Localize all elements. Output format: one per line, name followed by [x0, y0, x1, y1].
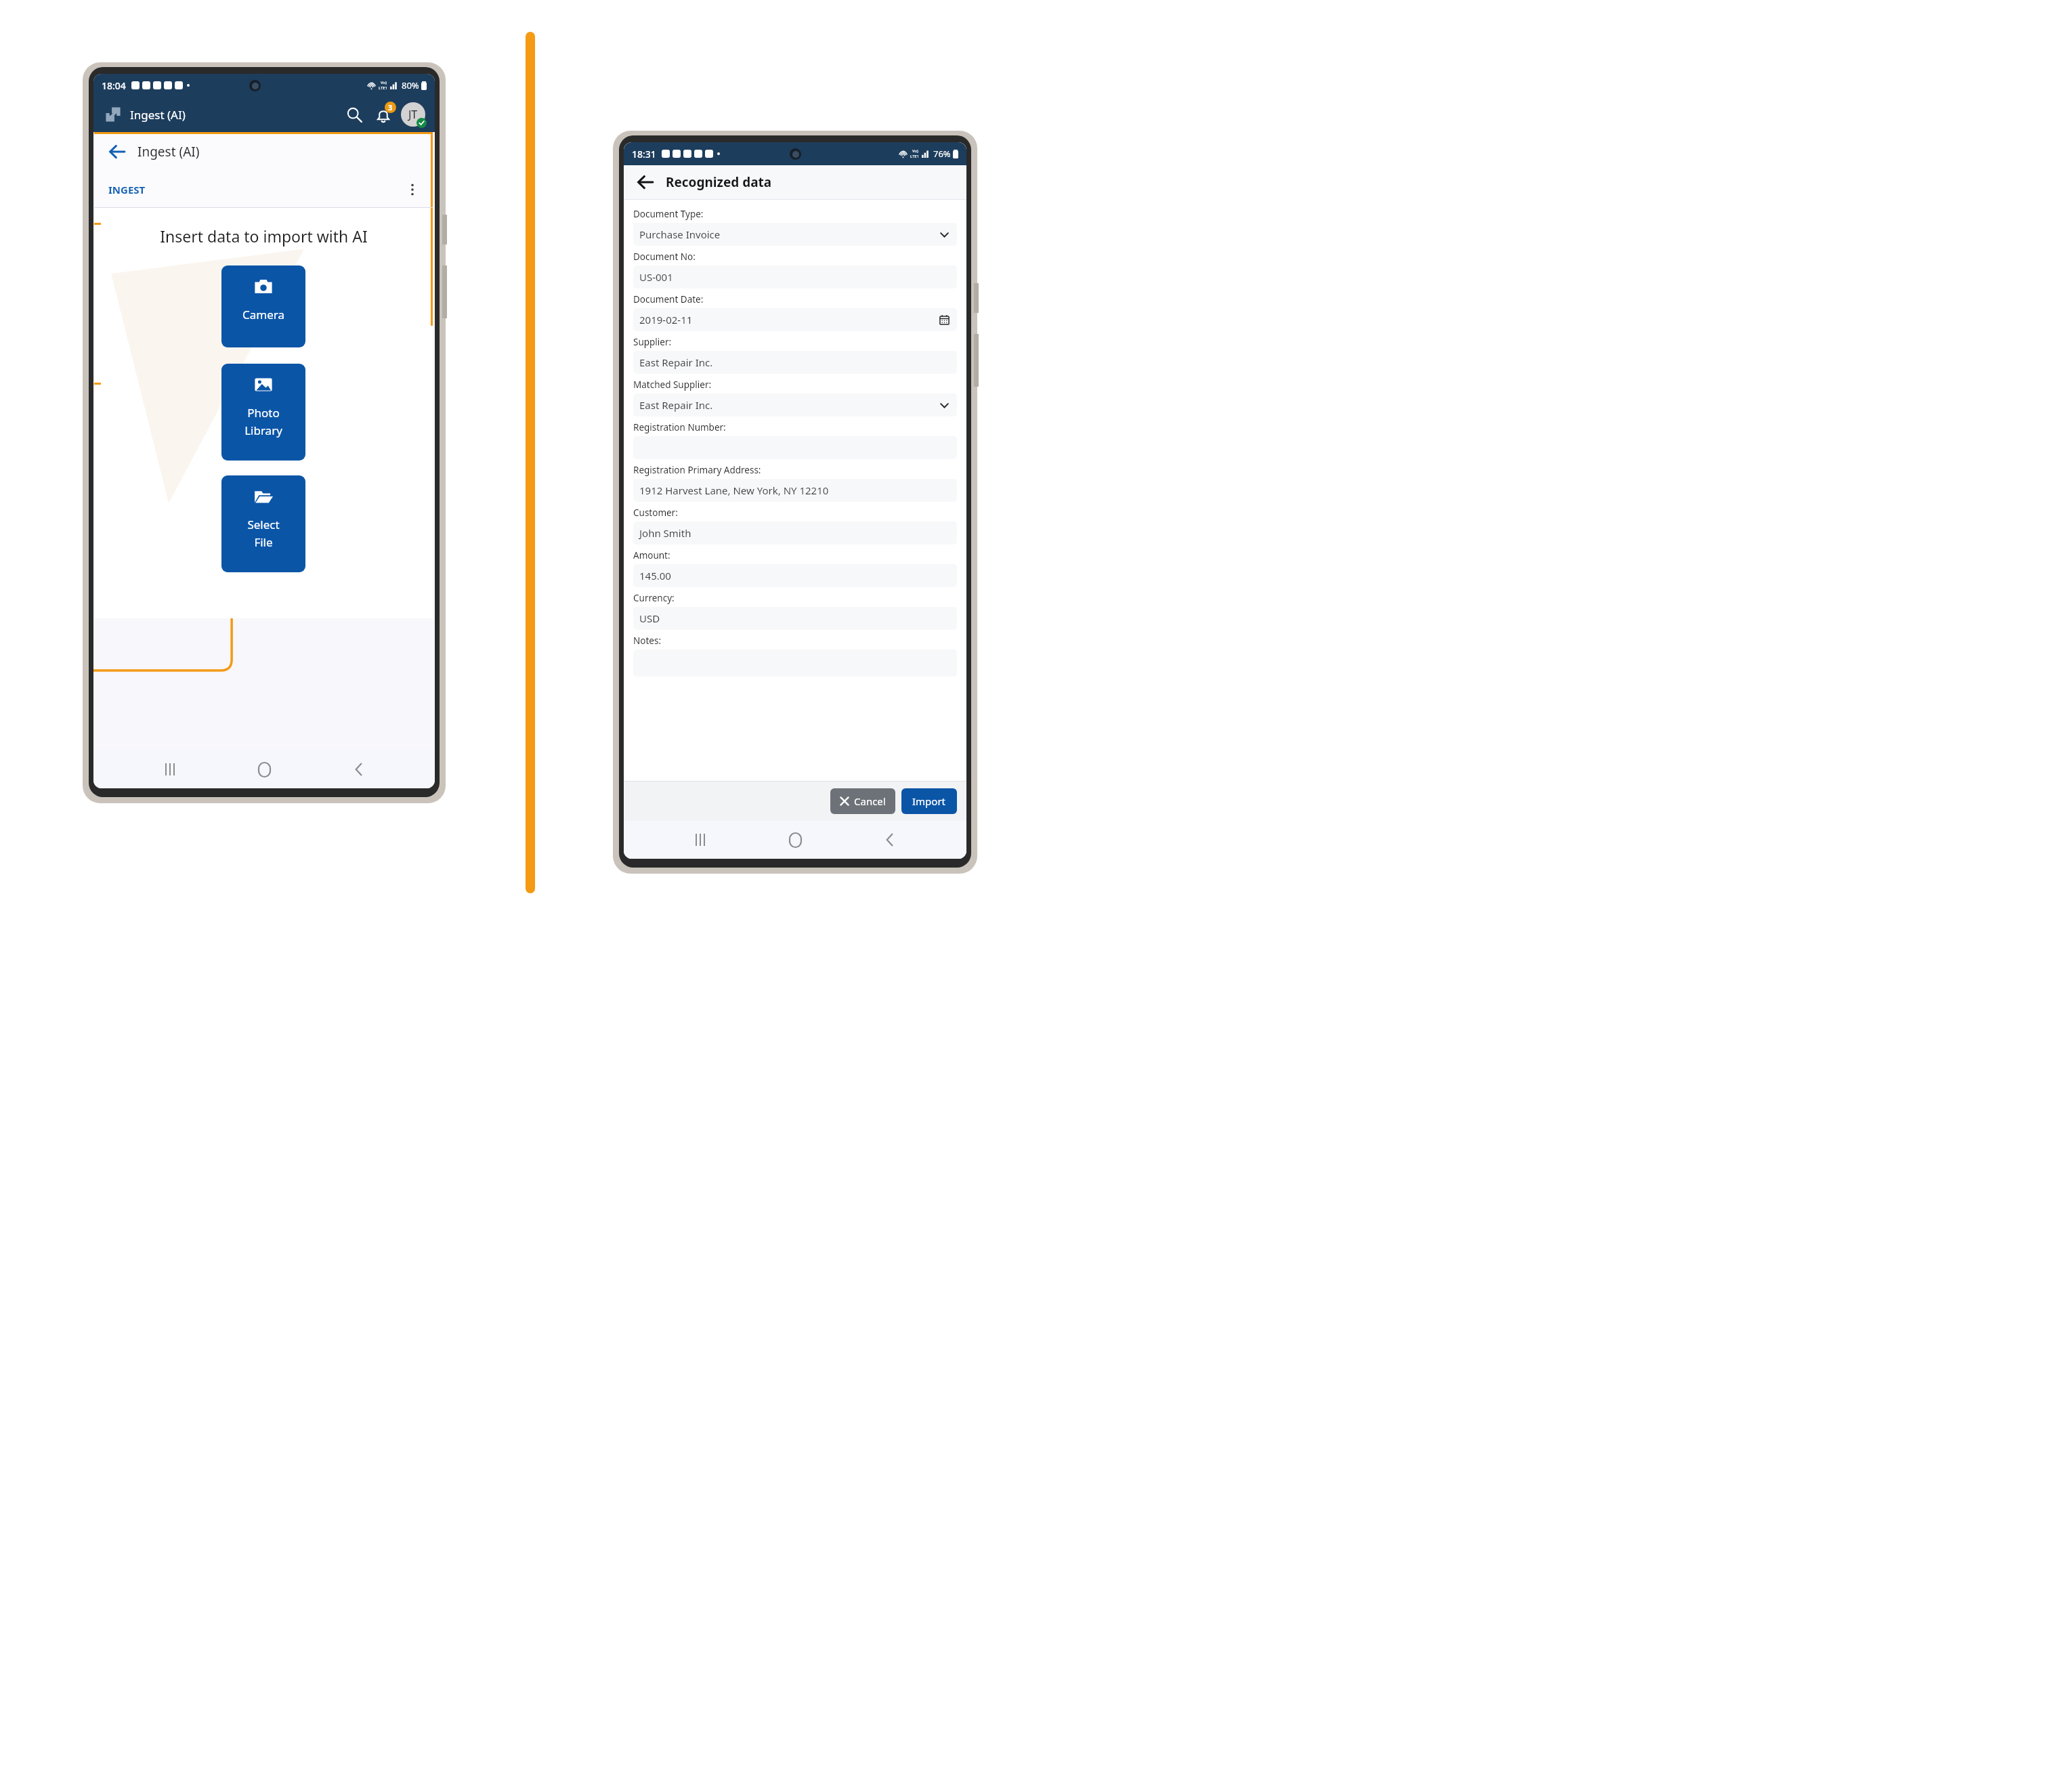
staticText: 80% — [402, 79, 419, 91]
staticText: Document Date: — [633, 293, 704, 305]
staticText: USD — [639, 612, 660, 625]
staticText: 1912 Harvest Lane, New York, NY 12210 — [639, 484, 829, 497]
staticText: Customer: — [633, 507, 678, 519]
staticText: East Repair Inc. — [639, 356, 713, 369]
button[interactable]: 145.00 — [633, 564, 957, 587]
staticText: Vo) — [912, 148, 918, 154]
button[interactable]: App logo — [102, 103, 125, 126]
button[interactable]: US-001 — [633, 265, 957, 289]
staticText: Registration Number: — [633, 421, 726, 433]
staticText: 76% — [933, 148, 951, 160]
staticText: East Repair Inc. — [639, 398, 713, 412]
staticText: Supplier: — [633, 336, 672, 348]
staticText: Notes: — [633, 635, 661, 647]
button[interactable]: 2019-02-11 — [633, 308, 957, 331]
button[interactable]: Search — [341, 102, 367, 127]
staticText: Currency: — [633, 592, 675, 604]
staticText: 2019-02-11 — [639, 313, 693, 326]
button[interactable]: Home — [777, 822, 813, 858]
button[interactable]: Back — [632, 169, 659, 196]
button[interactable]: Back — [341, 751, 377, 788]
staticText: 18:31 — [632, 148, 656, 161]
staticText: 3 — [388, 102, 393, 112]
button[interactable]: Recents — [682, 822, 719, 858]
staticText: LTE1 — [910, 154, 920, 159]
staticText: Photo Library — [244, 405, 282, 438]
button[interactable]: USD — [633, 607, 957, 630]
button[interactable]: John Smith — [633, 521, 957, 545]
staticText: Recognized data — [666, 173, 772, 191]
staticText: Camera — [242, 307, 284, 322]
button[interactable]: Camera — [221, 265, 305, 347]
staticText: Amount: — [633, 549, 670, 561]
button[interactable]: Back — [872, 822, 908, 858]
staticText: Ingest (AI) — [137, 143, 200, 161]
button[interactable]: East Repair Inc. — [633, 351, 957, 374]
button[interactable]: 1912 Harvest Lane, New York, NY 12210 — [633, 479, 957, 502]
staticText: 145.00 — [639, 569, 671, 582]
staticText: Import — [912, 794, 946, 808]
button[interactable]: More options — [400, 177, 425, 202]
button[interactable]: Photo Library — [221, 364, 305, 461]
button[interactable]: Import — [901, 788, 957, 814]
staticText: US-001 — [639, 270, 673, 284]
staticText: Ingest (AI) — [130, 107, 186, 123]
staticText: Matched Supplier: — [633, 379, 712, 391]
staticText: Document Type: — [633, 208, 704, 220]
button[interactable]: Select File — [221, 475, 305, 572]
staticText: INGEST — [108, 183, 146, 196]
staticText: Vo) — [381, 80, 387, 85]
staticText: Document No: — [633, 251, 696, 263]
button[interactable]: Home — [246, 751, 282, 788]
button[interactable]: Back — [104, 138, 131, 165]
staticText: Cancel — [854, 794, 886, 808]
staticText: Insert data to import with AI — [160, 226, 368, 247]
button[interactable]: Profile JT — [400, 101, 427, 128]
button[interactable]: Cancel — [830, 788, 895, 814]
staticText: John Smith — [639, 526, 691, 540]
staticText: 18:04 — [102, 79, 126, 92]
staticText: LTE1 — [379, 85, 388, 91]
button[interactable]: East Repair Inc. — [633, 393, 957, 417]
button[interactable]: Purchase Invoice — [633, 223, 957, 246]
staticText: JT — [408, 107, 418, 122]
staticText: Purchase Invoice — [639, 228, 721, 241]
staticText: Select File — [247, 517, 280, 550]
button[interactable]: Notifications, 3 new — [370, 101, 397, 128]
button[interactable]: Recents — [152, 751, 188, 788]
staticText: Registration Primary Address: — [633, 464, 761, 476]
